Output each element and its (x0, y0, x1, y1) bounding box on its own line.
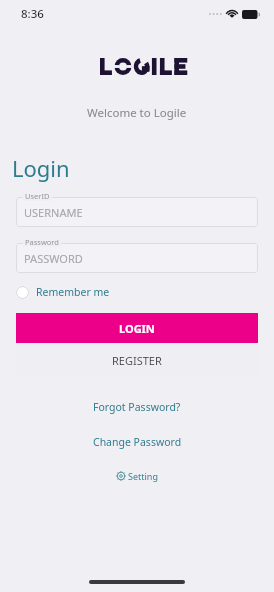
button[interactable]: Setting (113, 466, 162, 486)
staticText: USERNAME (24, 205, 83, 220)
button[interactable]: PASSWORD (16, 243, 258, 273)
staticText: 8:36 (21, 6, 44, 22)
staticText: PASSWORD (24, 251, 83, 266)
staticText: LOGIN (119, 321, 155, 336)
button[interactable]: REGISTER (16, 345, 258, 375)
button[interactable]: LOGIN (16, 313, 258, 343)
staticText: UserID (25, 191, 50, 201)
button[interactable]: Remember me (16, 285, 110, 299)
staticText: REGISTER (112, 353, 162, 368)
button[interactable]: USERNAME (16, 197, 258, 227)
button[interactable]: Change Password (89, 431, 186, 453)
button[interactable]: Forgot Password? (89, 396, 185, 418)
staticText: Remember me (36, 285, 110, 299)
staticText: Forgot Password? (93, 400, 181, 414)
staticText: Setting (128, 470, 158, 482)
staticText: Change Password (93, 435, 182, 449)
staticText: Password (25, 237, 59, 247)
staticText: Welcome to Logile (87, 105, 187, 121)
staticText: Login (12, 153, 70, 183)
